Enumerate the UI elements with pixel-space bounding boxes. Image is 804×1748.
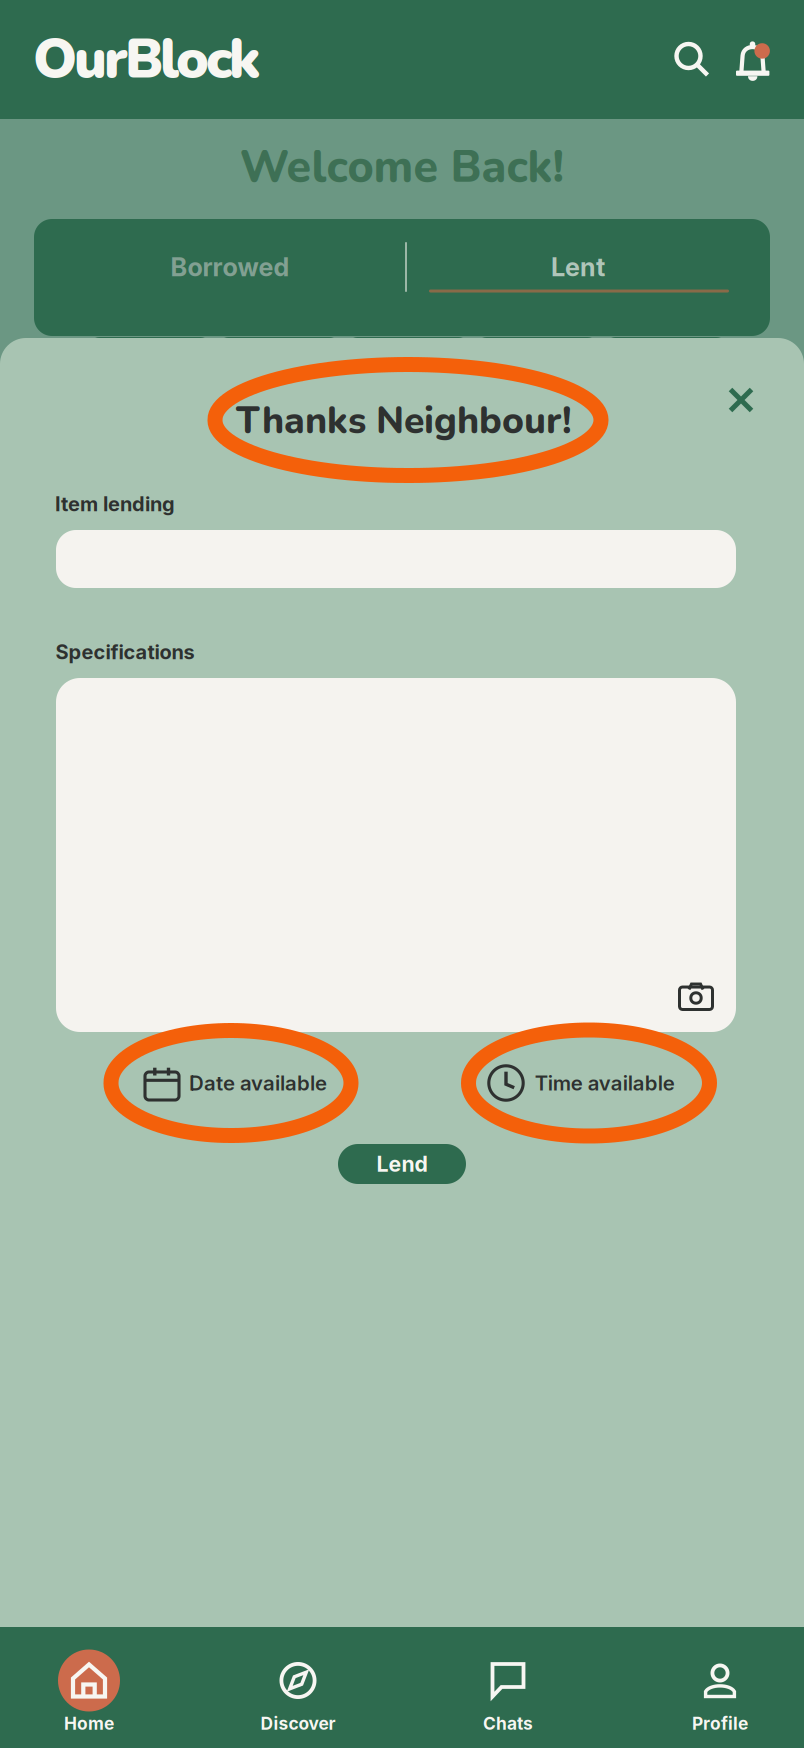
button[interactable]: Search — [674, 41, 710, 77]
button[interactable]: Discover — [223, 1649, 373, 1732]
staticText: Welcome Back! — [239, 136, 564, 197]
staticText: Date available — [189, 1071, 327, 1095]
staticText: Borrowed — [170, 252, 289, 282]
staticText: Thanks Neighbour! — [236, 395, 572, 446]
button[interactable]: Home — [14, 1649, 164, 1732]
staticText: Item lending — [55, 492, 175, 516]
staticText: OurBlock — [33, 22, 261, 97]
staticText: Lent — [551, 252, 605, 282]
button[interactable]: Add photo — [665, 968, 726, 1023]
staticText: Time available — [535, 1071, 675, 1095]
button[interactable]: Date available — [131, 1054, 341, 1112]
button[interactable]: Close — [710, 369, 772, 431]
staticText: Home — [64, 1713, 114, 1734]
staticText: Chats — [483, 1713, 533, 1734]
button[interactable]: Lend — [338, 1144, 466, 1184]
button[interactable]: Chats — [433, 1649, 583, 1732]
staticText: Profile — [692, 1713, 748, 1734]
staticText: Discover — [260, 1713, 335, 1734]
button[interactable]: Notifications — [736, 38, 777, 81]
button[interactable]: Time available — [473, 1052, 689, 1114]
staticText: Lend — [376, 1151, 427, 1177]
button[interactable]: Profile — [645, 1649, 795, 1732]
staticText: Specifications — [55, 640, 194, 664]
